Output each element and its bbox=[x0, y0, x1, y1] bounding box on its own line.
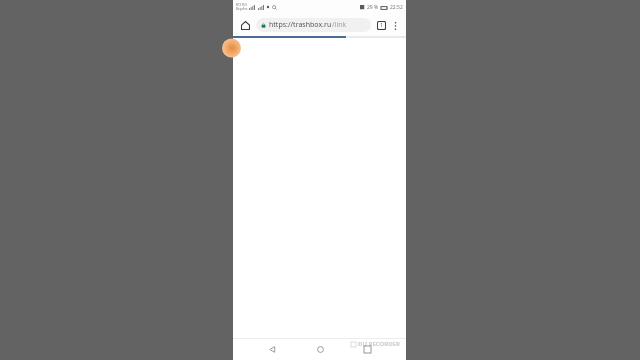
button[interactable]: Switch tabs bbox=[374, 18, 389, 33]
button[interactable]: Home bbox=[237, 17, 253, 33]
staticText: 22:52 bbox=[390, 4, 403, 11]
staticText: 29 % bbox=[367, 4, 379, 11]
button[interactable]: More options bbox=[389, 19, 402, 32]
staticText: MegaFon bbox=[236, 7, 248, 11]
staticText: 1 bbox=[380, 22, 383, 29]
button[interactable]: https://trashbox.ru bbox=[256, 18, 371, 32]
button[interactable]: Home bbox=[311, 340, 329, 358]
staticText: DU RECORDER bbox=[358, 340, 400, 348]
staticText: /link bbox=[332, 20, 347, 30]
button[interactable]: Back bbox=[263, 340, 281, 358]
button[interactable]: Recent apps bbox=[358, 340, 376, 358]
staticText: MTS RUS bbox=[236, 3, 247, 7]
staticText: https://trashbox.ru bbox=[269, 20, 332, 30]
